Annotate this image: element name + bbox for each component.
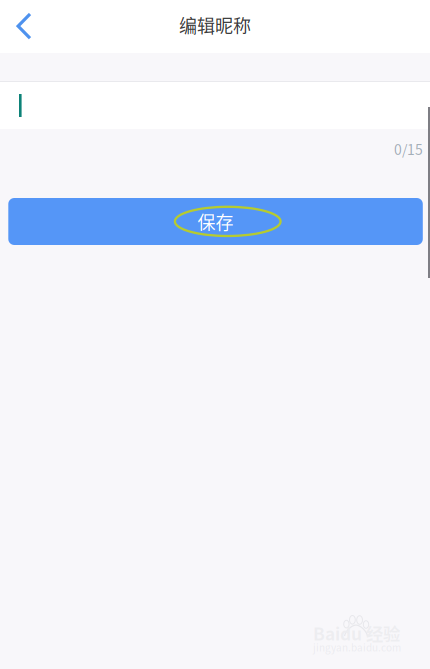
staticText: 0/15 (394, 139, 423, 159)
staticText: 编辑昵称 (179, 12, 251, 38)
button[interactable]: 保存 (8, 198, 423, 245)
staticText: jingyan.baidu.com (313, 640, 401, 654)
staticText: 保存 (198, 208, 234, 235)
button[interactable]: Back (0, 0, 48, 52)
staticText: Baidu 经验 (313, 620, 400, 646)
button[interactable]: Nickname (0, 82, 430, 129)
